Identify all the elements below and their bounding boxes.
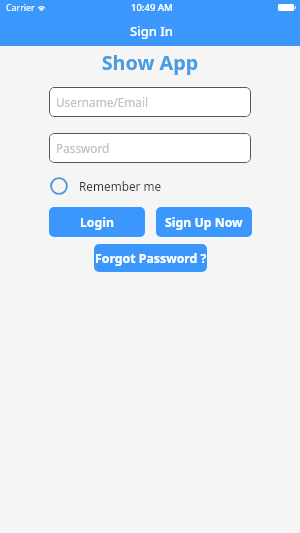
button[interactable]: Password <box>49 133 251 163</box>
button[interactable]: Login <box>49 207 145 237</box>
staticText: Password <box>56 140 110 156</box>
button[interactable]: Sign Up Now <box>156 207 252 237</box>
staticText: Show App <box>0 49 300 76</box>
staticText: Login <box>80 214 115 231</box>
staticText: Carrier <box>6 2 35 14</box>
staticText: Sign In <box>130 22 174 40</box>
staticText: Remember me <box>79 178 162 194</box>
staticText: 10:49 AM <box>131 1 173 14</box>
button[interactable]: Username/Email <box>49 87 251 117</box>
staticText: Sign Up Now <box>165 214 243 231</box>
staticText: Forgot Password ? <box>95 250 207 267</box>
other: Wifi <box>37 3 46 11</box>
button[interactable]: Remember me <box>50 175 162 197</box>
other: Battery <box>278 4 296 11</box>
button[interactable]: Forgot Password ? <box>94 244 207 272</box>
staticText: Username/Email <box>56 94 149 110</box>
